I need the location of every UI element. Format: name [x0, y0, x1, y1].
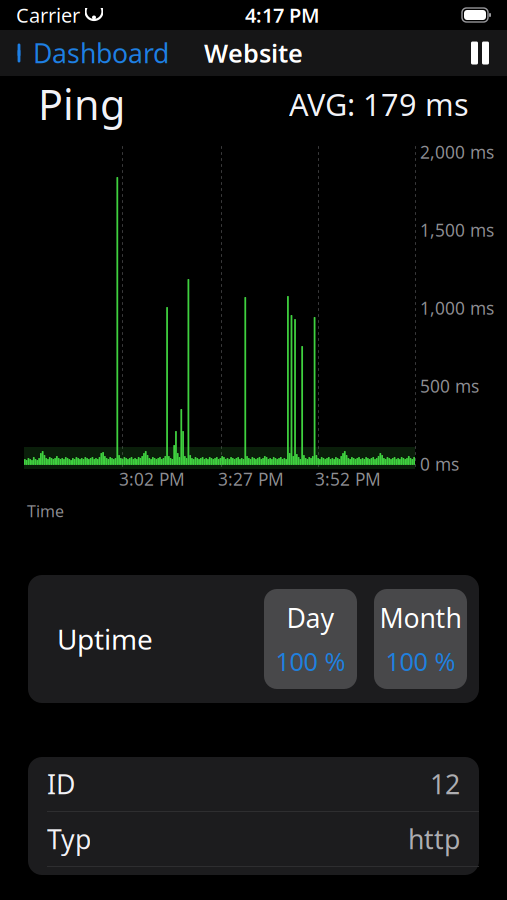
button[interactable]: Day	[264, 589, 357, 689]
button[interactable]: Month	[374, 589, 467, 689]
staticText: Typ	[47, 821, 91, 857]
staticText: AVG: 179 ms	[289, 84, 469, 124]
staticText: 1,000 ms	[420, 296, 494, 319]
staticText: 100 %	[275, 644, 345, 678]
staticText: Uptime	[57, 620, 153, 658]
staticText: Ping	[38, 77, 125, 131]
staticText: 3:27 PM	[218, 467, 284, 490]
staticText: 2,000 ms	[420, 140, 494, 163]
staticText: Day	[286, 600, 334, 635]
button[interactable]: Pause	[453, 31, 507, 75]
staticText: 0 ms	[420, 452, 459, 475]
staticText: Month	[379, 600, 461, 635]
staticText: http	[408, 821, 460, 857]
staticText: Website	[204, 36, 303, 70]
staticText: 100 %	[385, 644, 455, 678]
staticText: Time	[27, 500, 64, 522]
staticText: Carrier	[16, 2, 80, 28]
staticText: 3:02 PM	[119, 467, 185, 490]
staticText: 4:17 PM	[245, 2, 320, 28]
staticText: 500 ms	[420, 374, 479, 397]
staticText: 12	[430, 766, 460, 802]
button[interactable]: Dashboard	[0, 31, 183, 75]
button[interactable]: ID	[28, 757, 479, 812]
staticText: ID	[47, 766, 75, 802]
staticText: Dashboard	[33, 35, 169, 71]
staticText: 3:52 PM	[315, 467, 381, 490]
button[interactable]: Typ	[28, 812, 479, 867]
staticText: 1,500 ms	[420, 218, 494, 241]
